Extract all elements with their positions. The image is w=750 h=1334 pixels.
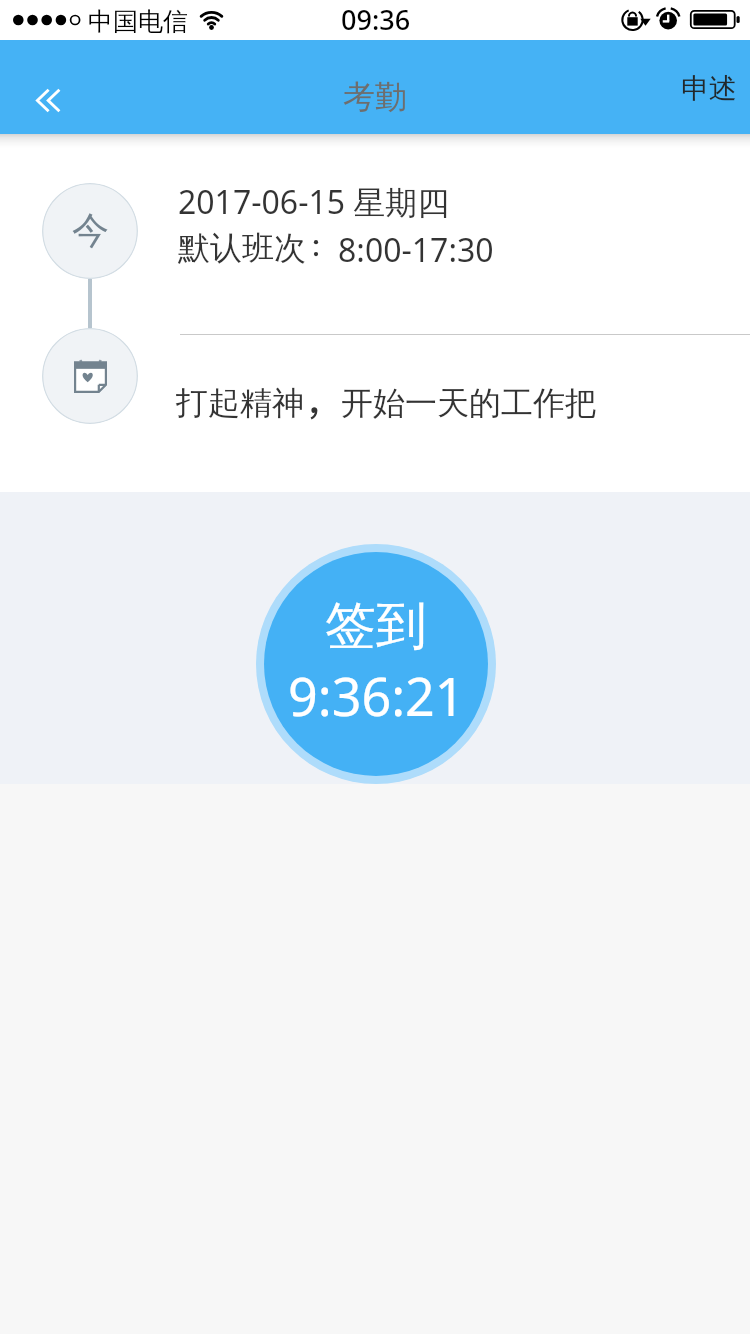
- staticText: 09:36: [341, 1, 411, 38]
- staticText: 默认班次: [178, 228, 306, 268]
- button[interactable]: 申述: [656, 48, 750, 126]
- button[interactable]: Today: [42, 183, 138, 279]
- staticText: 2017-06-15 星期四: [178, 180, 450, 224]
- staticText: 9:36:21: [288, 660, 465, 731]
- staticText: 申述: [681, 71, 737, 106]
- staticText: 8:00-17:30: [338, 228, 494, 272]
- button[interactable]: 签到 Check in: [256, 544, 496, 784]
- staticText: 开始一天的工作把: [341, 383, 597, 423]
- staticText: 打起精神: [176, 383, 304, 423]
- button[interactable]: Back: [0, 40, 96, 134]
- staticText: 中国电信: [88, 6, 188, 37]
- staticText: 今: [72, 207, 109, 254]
- staticText: 签到: [325, 594, 427, 658]
- button[interactable]: Calendar note: [42, 328, 138, 424]
- staticText: 考勤: [343, 77, 407, 117]
